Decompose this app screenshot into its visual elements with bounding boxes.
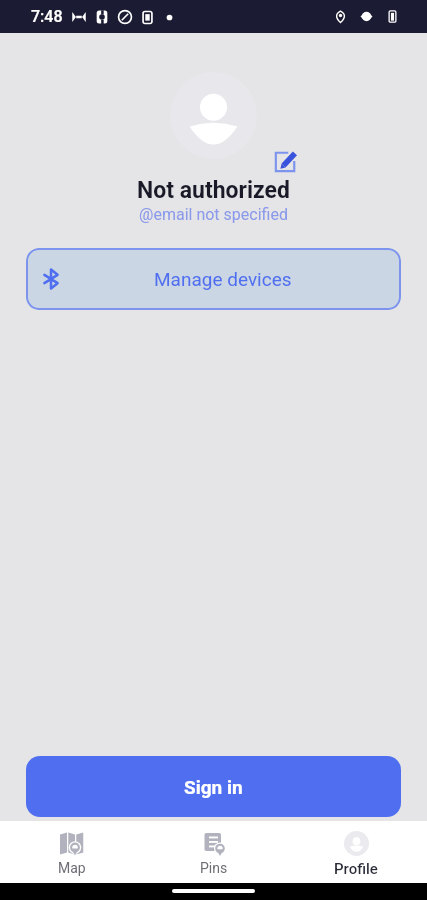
staticText: Map (58, 860, 86, 876)
staticText: Pins (200, 860, 228, 876)
staticText: Not authorized (0, 177, 427, 204)
button[interactable]: Edit profile (268, 144, 302, 178)
button[interactable]: Profile photo (170, 72, 257, 159)
staticText: Manage devices (154, 268, 292, 290)
staticText: Sign in (184, 776, 243, 798)
button[interactable]: Pins (143, 821, 285, 883)
staticText: @email not specified (0, 205, 427, 224)
staticText: 7:48 (31, 7, 63, 26)
button[interactable]: Profile (285, 821, 427, 883)
button[interactable]: Map (0, 821, 143, 883)
button[interactable]: Sign in (26, 756, 401, 817)
staticText: Profile (334, 860, 378, 878)
button[interactable]: Manage devices (26, 248, 401, 310)
